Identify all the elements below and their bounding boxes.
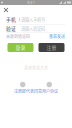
button[interactable]: 登录 [7,43,33,52]
staticText: 手机 [6,16,16,23]
button[interactable]: WeChat login [20,82,25,87]
button[interactable]: Close [0,5,12,15]
button[interactable]: 注册 [38,43,64,52]
staticText: 请输入手机号 [21,16,45,23]
staticText: 未收到验证码 [6,34,30,39]
staticText: 9:41 [27,0,35,5]
button[interactable]: QQ login [46,82,52,87]
staticText: 验证 [6,25,16,32]
button[interactable]: 注册即代表同意用户协议 [14,88,58,94]
staticText: 注册 [46,44,56,51]
staticText: 登录 [15,44,25,51]
staticText: 请输入验证码 [21,25,45,32]
staticText: 注册即代表同意用户协议 [14,88,58,94]
button[interactable]: 重新发送 [49,34,65,39]
staticText: 重新发送 [49,34,65,39]
staticText: 其他登录方式 [24,65,48,71]
